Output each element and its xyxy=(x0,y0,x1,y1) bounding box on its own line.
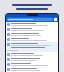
button[interactable] xyxy=(6,67,58,72)
button[interactable] xyxy=(6,52,58,57)
button[interactable] xyxy=(6,37,58,42)
button[interactable] xyxy=(6,62,58,67)
button[interactable] xyxy=(6,42,58,49)
button[interactable]: Account xyxy=(54,18,57,21)
button[interactable] xyxy=(6,22,58,27)
button[interactable] xyxy=(6,57,58,62)
button[interactable] xyxy=(6,27,58,32)
button[interactable] xyxy=(6,32,58,37)
button[interactable]: Search xyxy=(7,18,53,21)
